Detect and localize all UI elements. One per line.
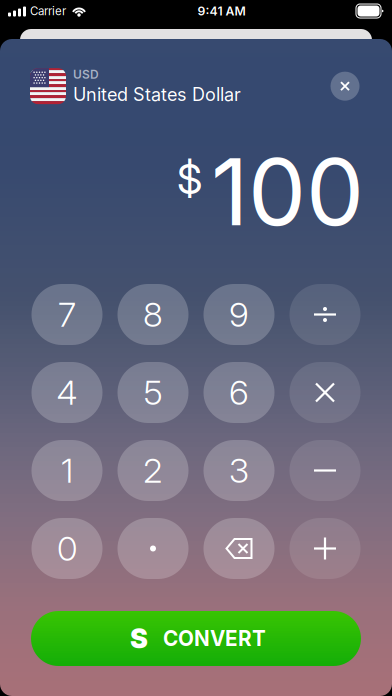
button[interactable]: 4 xyxy=(31,362,102,423)
button[interactable]: 3 xyxy=(203,440,274,501)
staticText: $ xyxy=(177,154,202,204)
button[interactable]: 0 xyxy=(31,518,102,579)
button[interactable]: 8 xyxy=(117,284,188,345)
button[interactable]: Close xyxy=(328,69,362,103)
staticText: 3 xyxy=(229,450,249,491)
staticText: 1 xyxy=(61,450,73,491)
staticText: 7 xyxy=(58,294,76,335)
button[interactable]: 7 xyxy=(31,284,102,345)
staticText: 8 xyxy=(143,294,163,335)
staticText: 4 xyxy=(56,372,77,413)
staticText: 9 xyxy=(229,294,249,335)
staticText: United States Dollar xyxy=(73,83,241,105)
button[interactable]: 9 xyxy=(203,284,274,345)
staticText: 0 xyxy=(57,528,77,569)
staticText: USD xyxy=(73,67,99,81)
button[interactable]: Delete xyxy=(203,518,274,579)
button[interactable]: 1 xyxy=(31,440,102,501)
button[interactable]: 6 xyxy=(203,362,274,423)
button[interactable]: Plus xyxy=(289,518,360,579)
staticText: 2 xyxy=(143,450,163,491)
staticText: Carrier xyxy=(30,4,66,18)
staticText: 100 xyxy=(211,136,364,247)
button[interactable]: Decimal point xyxy=(117,518,188,579)
staticText: CONVERT xyxy=(163,626,266,651)
button[interactable]: Divide xyxy=(289,284,360,345)
button[interactable]: 5 xyxy=(117,362,188,423)
staticText: S xyxy=(130,622,148,655)
staticText: 6 xyxy=(229,372,249,413)
button[interactable]: 2 xyxy=(117,440,188,501)
staticText: 5 xyxy=(143,372,162,413)
button[interactable]: Multiply xyxy=(289,362,360,423)
button[interactable]: Minus xyxy=(289,440,360,501)
staticText: 9:41 AM xyxy=(197,4,245,18)
button[interactable]: S xyxy=(31,611,361,666)
